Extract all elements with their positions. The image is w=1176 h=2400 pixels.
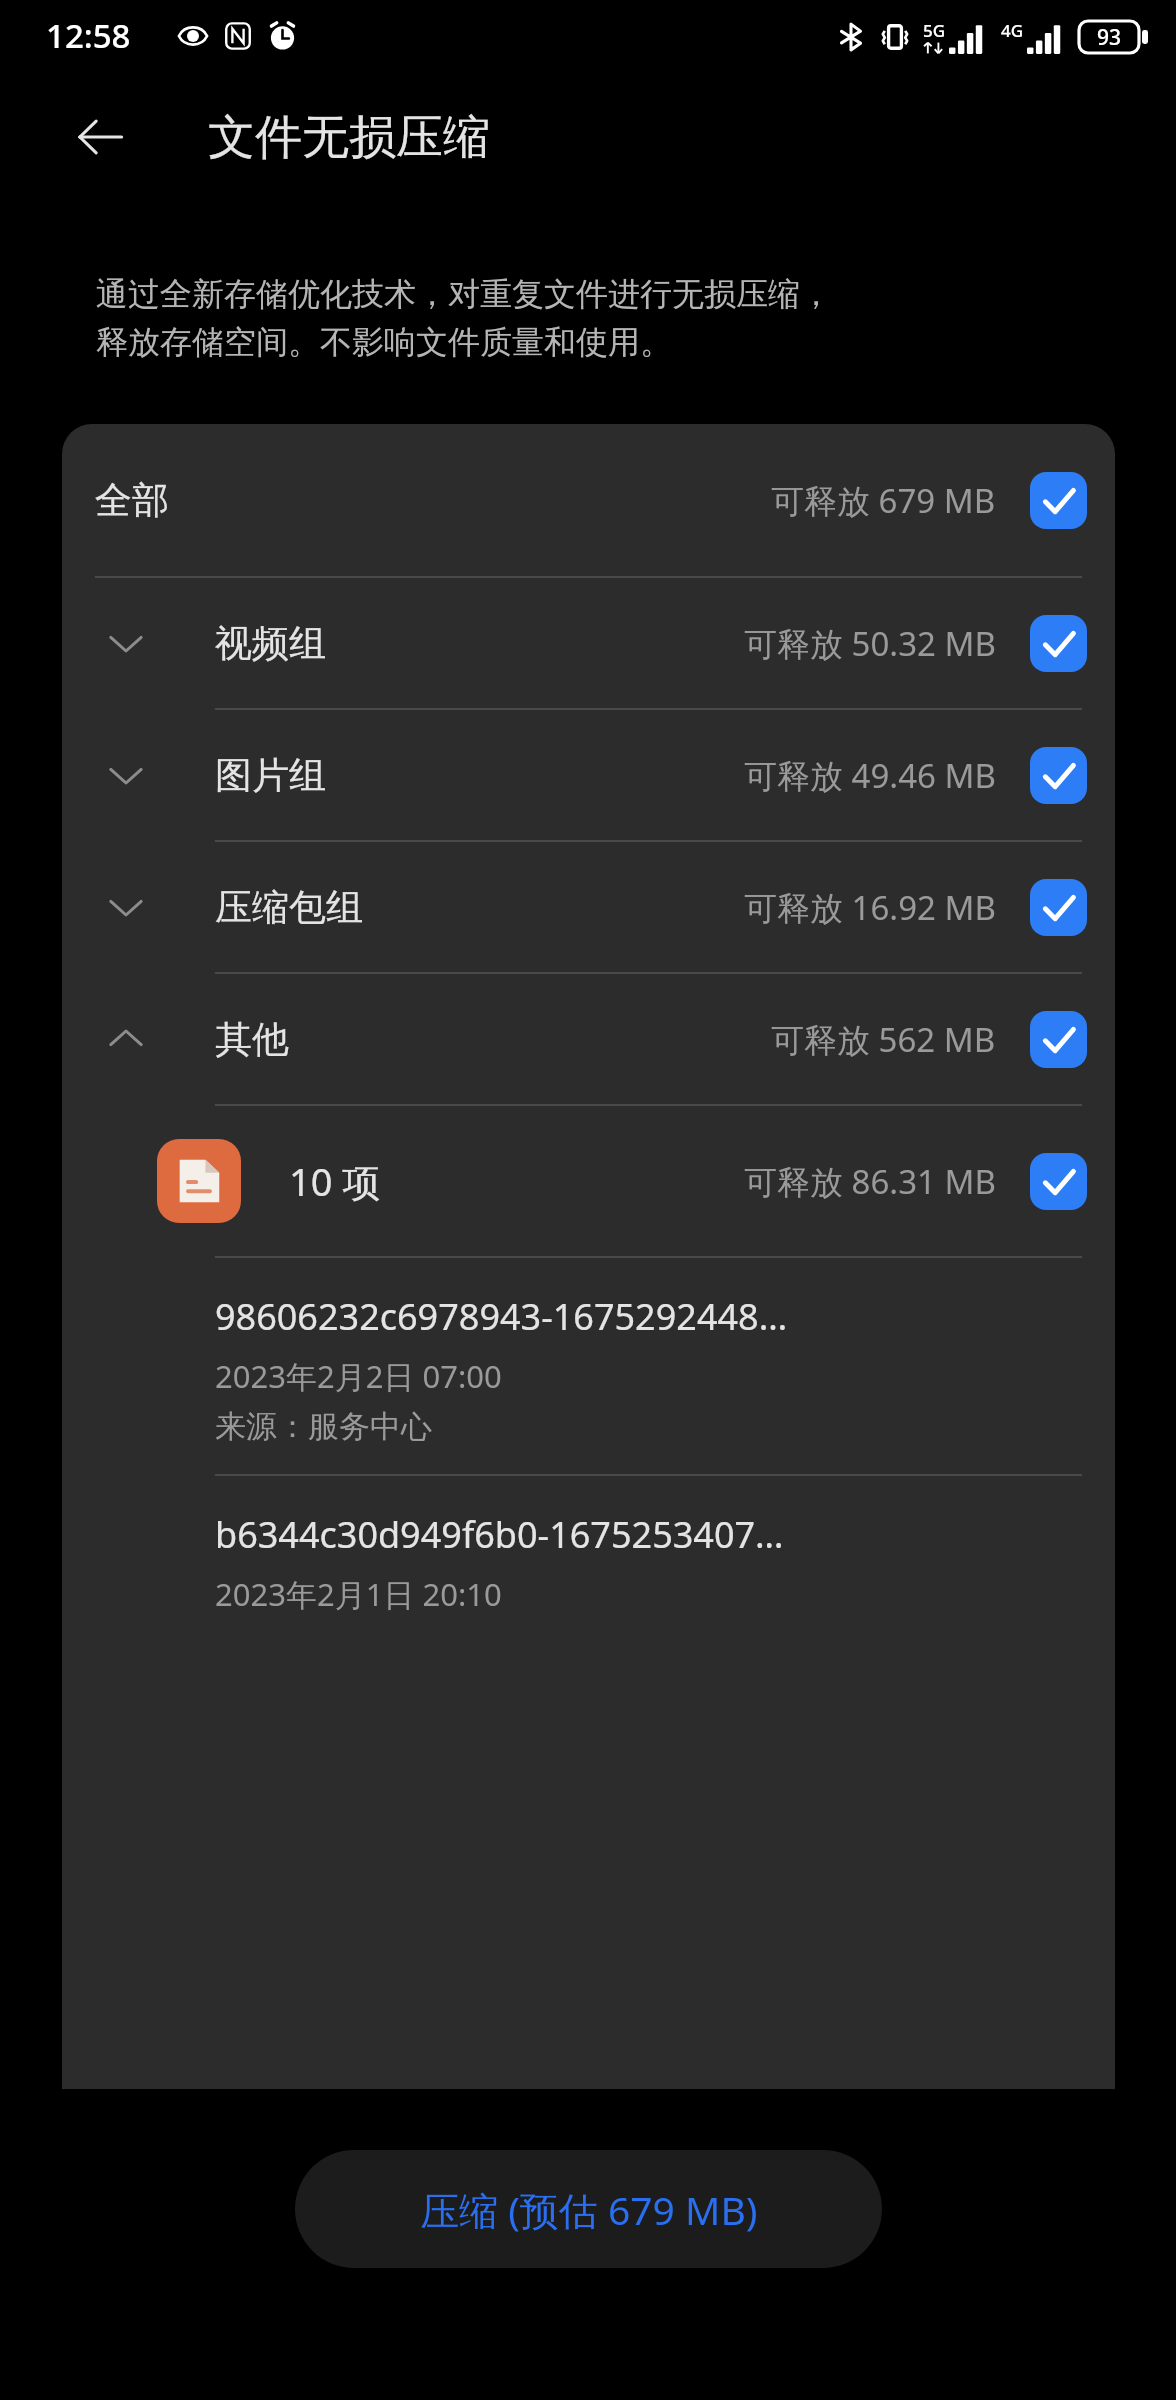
button[interactable]: 压缩 (预估 679 MB): [295, 2150, 882, 2268]
button[interactable]: Selected: [1030, 1153, 1087, 1210]
button[interactable]: 图片组: [62, 710, 1115, 840]
staticText: 98606232c6978943-1675292448…: [215, 1292, 788, 1341]
staticText: 通过全新存储优化技术，对重复文件进行无损压缩，: [96, 274, 832, 314]
button[interactable]: 其他: [62, 974, 1115, 1104]
staticText: 可释放 50.32 MB: [744, 621, 996, 666]
button[interactable]: Selected: [1030, 615, 1087, 672]
staticText: 10 项: [289, 1155, 381, 1207]
staticText: 5G: [923, 19, 946, 42]
staticText: 压缩 (预估 679 MB): [420, 2183, 758, 2236]
staticText: 可释放 49.46 MB: [744, 753, 996, 798]
staticText: 来源：服务中心: [215, 1407, 432, 1446]
staticText: 视频组: [215, 620, 326, 667]
staticText: 释放存储空间。不影响文件质量和使用。: [96, 322, 672, 362]
button[interactable]: Back: [66, 103, 134, 171]
button[interactable]: 压缩包组: [62, 842, 1115, 972]
staticText: 可释放 16.92 MB: [744, 885, 996, 930]
staticText: 可释放 562 MB: [771, 1017, 996, 1062]
button[interactable]: 10 项: [62, 1106, 1115, 1256]
staticText: 4G: [1001, 19, 1024, 42]
button[interactable]: 全部: [62, 424, 1115, 576]
staticText: 12:58: [46, 13, 131, 58]
staticText: 其他: [215, 1016, 289, 1063]
staticText: 图片组: [215, 752, 326, 799]
staticText: 压缩包组: [215, 884, 363, 931]
button[interactable]: Selected: [1030, 879, 1087, 936]
button[interactable]: Selected: [1030, 1011, 1087, 1068]
staticText: 文件无损压缩: [208, 108, 490, 167]
button[interactable]: b6344c30d949f6b0-1675253407…: [62, 1476, 1115, 1643]
button[interactable]: Selected: [1030, 747, 1087, 804]
staticText: 2023年2月2日 07:00: [215, 1355, 502, 1397]
button[interactable]: 视频组: [62, 578, 1115, 708]
staticText: 全部: [95, 477, 169, 524]
staticText: 93: [1097, 23, 1122, 52]
staticText: 可释放 679 MB: [771, 478, 996, 523]
staticText: b6344c30d949f6b0-1675253407…: [215, 1510, 784, 1559]
staticText: 2023年2月1日 20:10: [215, 1573, 502, 1615]
button[interactable]: 98606232c6978943-1675292448…: [62, 1258, 1115, 1474]
staticText: 可释放 86.31 MB: [744, 1159, 996, 1204]
button[interactable]: Selected: [1030, 472, 1087, 529]
